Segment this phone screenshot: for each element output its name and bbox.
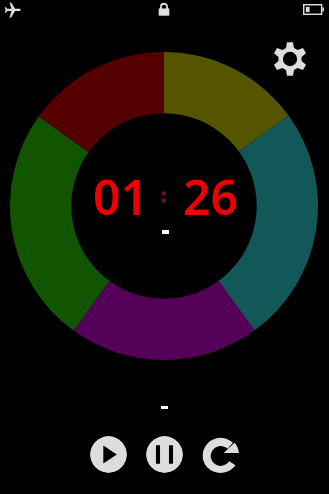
button[interactable]: Timer dial bbox=[10, 52, 318, 360]
button[interactable]: Settings bbox=[273, 42, 307, 76]
staticText: 26 bbox=[183, 164, 238, 229]
button[interactable]: Reset bbox=[202, 436, 239, 473]
button[interactable]: Play bbox=[90, 436, 127, 473]
button[interactable]: Pause bbox=[146, 436, 183, 473]
staticText: 01 bbox=[93, 164, 148, 229]
